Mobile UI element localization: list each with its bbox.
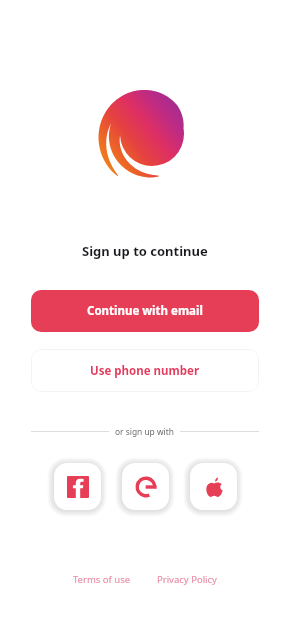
button[interactable]: Continue with email bbox=[31, 290, 259, 332]
staticText: Sign up to continue bbox=[82, 242, 208, 260]
button[interactable]: Privacy Policy bbox=[157, 573, 217, 586]
button[interactable]: Sign up with Google bbox=[122, 463, 169, 510]
button[interactable]: Terms of use bbox=[73, 573, 131, 586]
button[interactable]: Sign up with Apple bbox=[190, 463, 237, 510]
staticText: or sign up with bbox=[115, 426, 174, 437]
staticText: Continue with email bbox=[87, 303, 203, 319]
staticText: Use phone number bbox=[90, 363, 200, 379]
button[interactable]: Use phone number bbox=[31, 349, 259, 392]
button[interactable]: Sign up with Facebook bbox=[54, 463, 101, 510]
